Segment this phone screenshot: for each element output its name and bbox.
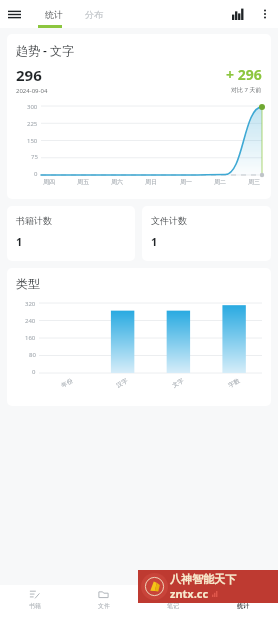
staticText: 对比 7 天前: [231, 86, 262, 94]
staticText: 书籍计数: [16, 215, 52, 226]
staticText: 分布: [85, 9, 103, 20]
staticText: 周五: [75, 178, 91, 186]
staticText: 1: [16, 234, 23, 249]
staticText: 笔记: [167, 602, 179, 610]
staticText: 周三: [246, 178, 262, 186]
staticText: zntx.cc: [170, 586, 209, 601]
staticText: 2024-09-04: [16, 87, 48, 95]
staticText: 150: [27, 137, 38, 145]
staticText: 0: [32, 368, 36, 376]
staticText: 296: [16, 65, 42, 85]
staticText: 周六: [109, 178, 125, 186]
button[interactable]: 书籍: [0, 585, 69, 617]
staticText: 320: [25, 300, 36, 308]
button[interactable]: 书籍计数: [7, 206, 135, 261]
staticText: 文件计数: [151, 215, 187, 226]
button[interactable]: 分布: [74, 0, 114, 28]
staticText: 文字: [171, 376, 185, 389]
staticText: 80: [29, 351, 36, 359]
button[interactable]: 笔记: [138, 585, 208, 617]
button[interactable]: Chart: [224, 0, 252, 28]
staticText: 字数: [227, 376, 241, 389]
button[interactable]: Menu: [0, 0, 28, 28]
staticText: 225: [27, 120, 38, 128]
button[interactable]: 文件: [69, 585, 138, 617]
staticText: 文件: [98, 602, 110, 610]
staticText: 160: [25, 334, 36, 342]
staticText: 类型: [16, 276, 40, 291]
staticText: 年份: [60, 376, 74, 389]
staticText: + 296: [226, 65, 262, 84]
staticText: 汉字: [115, 376, 129, 389]
button[interactable]: More options: [252, 1, 278, 27]
button[interactable]: 统计: [34, 0, 74, 28]
staticText: 240: [25, 317, 36, 325]
staticText: 300: [27, 103, 38, 111]
staticText: 0: [34, 170, 38, 178]
staticText: 周四: [41, 178, 57, 186]
staticText: 书籍: [29, 602, 41, 610]
button[interactable]: 趋势 - 文字: [7, 34, 271, 199]
staticText: 统计: [45, 9, 63, 20]
staticText: 1: [151, 234, 158, 249]
staticText: 统计: [237, 602, 249, 610]
staticText: 周日: [143, 178, 159, 186]
staticText: 周二: [212, 178, 228, 186]
button[interactable]: 文件计数: [142, 206, 271, 261]
staticText: 八神智能天下: [170, 572, 236, 586]
staticText: 趋势 - 文字: [16, 42, 75, 58]
button[interactable]: 统计: [208, 585, 278, 617]
button[interactable]: 类型: [7, 268, 271, 406]
staticText: 75: [31, 153, 38, 161]
staticText: 周一: [178, 178, 194, 186]
